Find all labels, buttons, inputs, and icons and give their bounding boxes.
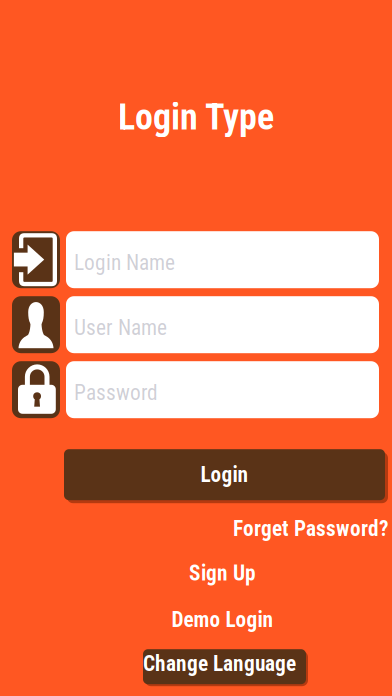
button[interactable]: Forget Password? (64, 500, 385, 551)
staticText: Sign Up (189, 561, 256, 586)
button[interactable]: Login (64, 449, 385, 500)
staticText: Login Type (118, 96, 274, 138)
staticText: Forget Password? (233, 516, 389, 541)
button[interactable]: Sign Up (64, 551, 385, 595)
button[interactable]: Change Language (143, 649, 306, 684)
staticText: User Name (74, 315, 167, 340)
staticText: Password (74, 380, 158, 405)
staticText: Demo Login (171, 607, 273, 632)
staticText: Login Name (74, 250, 175, 275)
staticText: Change Language (143, 651, 296, 676)
button[interactable]: Demo Login (64, 595, 385, 642)
staticText: Login (200, 462, 248, 487)
